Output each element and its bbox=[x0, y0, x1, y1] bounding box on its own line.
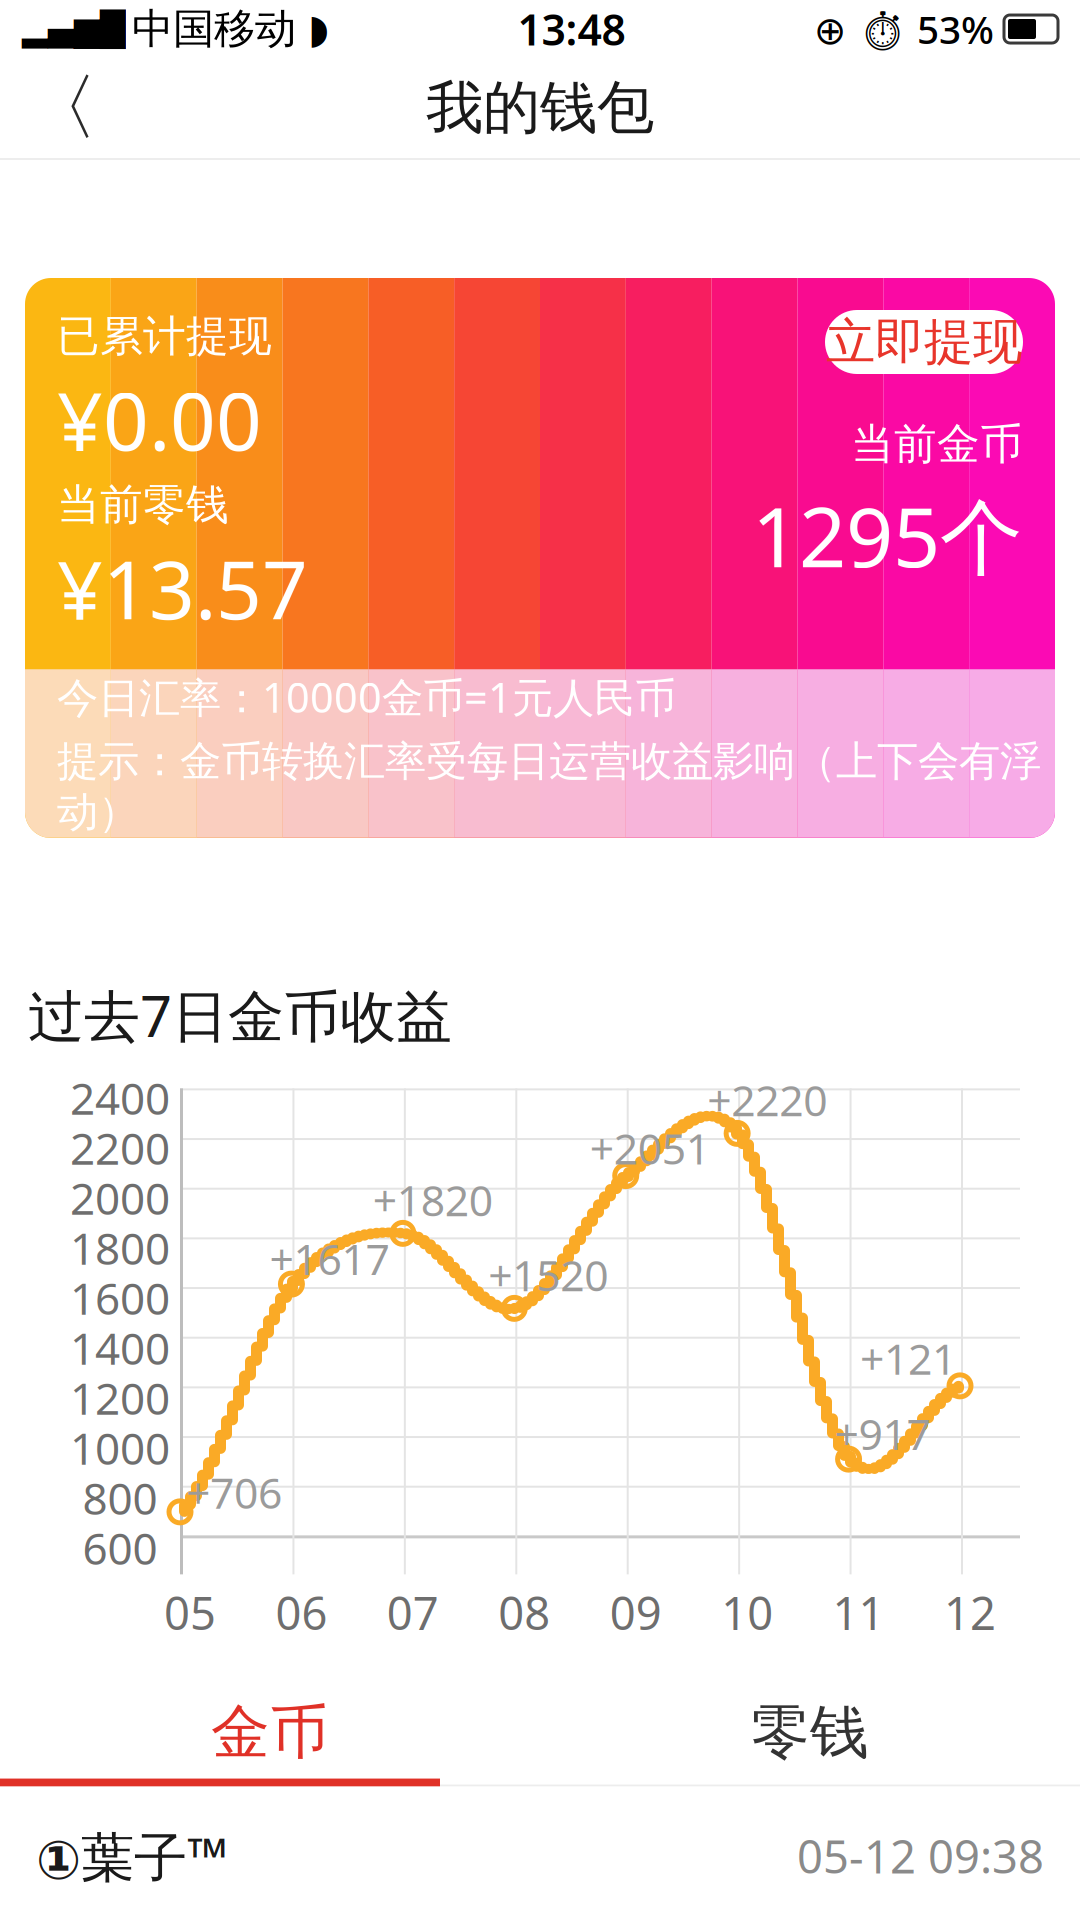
button[interactable]: Back bbox=[12, 58, 112, 158]
staticText: 05-12 09:38 bbox=[797, 1826, 1044, 1886]
staticText: 1600 bbox=[70, 1268, 170, 1327]
staticText: 零钱 bbox=[751, 1696, 869, 1769]
staticText: 当前零钱 bbox=[57, 479, 229, 531]
staticText: 08 bbox=[498, 1582, 550, 1643]
staticText: 今日汇率：10000金币=1元人民币 bbox=[57, 669, 676, 724]
staticText: 1000 bbox=[70, 1418, 170, 1477]
staticText: 07 bbox=[387, 1582, 439, 1643]
staticText: 05 bbox=[164, 1582, 216, 1643]
staticText: 1200 bbox=[70, 1368, 170, 1427]
staticText: 1400 bbox=[70, 1318, 170, 1377]
staticText: 我的钱包 bbox=[426, 73, 654, 143]
staticText: 1295个 bbox=[752, 480, 1023, 590]
staticText: +706 bbox=[186, 1464, 282, 1521]
staticText: +1820 bbox=[373, 1171, 493, 1228]
staticText: +2220 bbox=[707, 1071, 827, 1128]
staticText: +2051 bbox=[590, 1120, 710, 1176]
staticText: +121 bbox=[860, 1330, 956, 1387]
button[interactable]: 立即提现 bbox=[825, 310, 1023, 374]
staticText: ①葉子™ bbox=[36, 1821, 228, 1891]
staticText: 09 bbox=[610, 1582, 662, 1643]
staticText: ¥13.57 bbox=[57, 535, 308, 641]
staticText: 06 bbox=[275, 1582, 327, 1643]
staticText: 12 bbox=[944, 1582, 996, 1643]
staticText: 立即提现 bbox=[826, 312, 1022, 372]
button[interactable]: 金币 bbox=[0, 1687, 540, 1779]
button[interactable]: ①葉子™ bbox=[0, 1787, 1080, 1920]
staticText: 10 bbox=[721, 1582, 773, 1643]
staticText: 600 bbox=[82, 1518, 157, 1577]
staticText: ¥0.00 bbox=[57, 366, 262, 473]
staticText: 1800 bbox=[70, 1218, 170, 1277]
staticText: 中国移动 bbox=[132, 4, 296, 54]
staticText: +917 bbox=[835, 1405, 931, 1462]
staticText: +1617 bbox=[269, 1230, 389, 1287]
staticText: 当前金币 bbox=[851, 418, 1023, 470]
staticText: 已累计提现 bbox=[57, 310, 272, 362]
staticText: 2200 bbox=[70, 1118, 170, 1177]
staticText: 〈 bbox=[26, 64, 98, 152]
staticText: +1520 bbox=[488, 1246, 608, 1303]
staticText: 金币 bbox=[211, 1696, 329, 1769]
staticText: ▂▄▆█ bbox=[22, 10, 126, 48]
staticText: 800 bbox=[82, 1468, 157, 1527]
button[interactable]: 零钱 bbox=[540, 1687, 1080, 1779]
staticText: ⊕ ⏱ 53% bbox=[814, 3, 994, 55]
staticText: 过去7日金币收益 bbox=[28, 978, 452, 1052]
staticText: 2400 bbox=[70, 1068, 170, 1127]
staticText: 提示：金币转换汇率受每日运营收益影响（上下会有浮动） bbox=[57, 736, 1041, 838]
staticText: 13:48 bbox=[517, 1, 625, 57]
staticText: 2000 bbox=[70, 1168, 170, 1227]
staticText: 11 bbox=[833, 1582, 885, 1643]
staticText: ◗ bbox=[308, 6, 329, 52]
